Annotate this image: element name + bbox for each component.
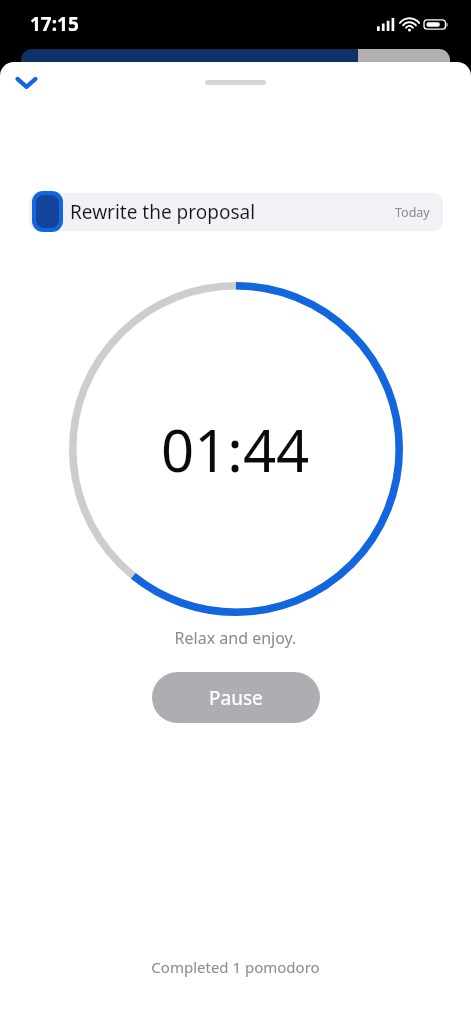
button[interactable]: Collapse [4, 62, 48, 102]
staticText: Completed 1 pomodoro [0, 957, 471, 977]
staticText: Today [395, 204, 430, 221]
staticText: Pause [209, 685, 263, 711]
button[interactable]: Toggle task complete [36, 195, 59, 228]
button[interactable]: Pause [152, 672, 320, 723]
staticText: 01:44 [161, 410, 310, 489]
staticText: Relax and enjoy. [0, 627, 471, 649]
staticText: 17:15 [30, 11, 79, 37]
button[interactable]: Rewrite the proposal [29, 193, 443, 231]
staticText: Rewrite the proposal [70, 199, 395, 225]
